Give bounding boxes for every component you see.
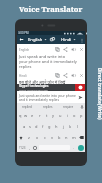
button[interactable]: Share	[63, 47, 68, 52]
button[interactable]: q	[17, 110, 23, 121]
staticText: b	[58, 135, 61, 140]
button[interactable]: replied	[17, 103, 37, 110]
staticText: Hindi	[61, 37, 72, 43]
staticText: e	[31, 113, 34, 118]
button[interactable]: s	[27, 121, 33, 132]
staticText: ,	[29, 145, 31, 150]
staticText: i	[67, 113, 69, 118]
button[interactable]: u	[57, 110, 64, 121]
staticText: r	[39, 113, 41, 118]
staticText: w	[24, 113, 28, 118]
staticText: x	[36, 135, 39, 140]
button[interactable]: Copy	[55, 73, 60, 78]
button[interactable]: Hindi	[57, 35, 79, 44]
button[interactable]: w	[23, 110, 29, 121]
button[interactable]: k	[67, 121, 74, 132]
button[interactable]: n	[63, 132, 70, 143]
staticText: Voice Translator	[19, 4, 83, 14]
staticText: Direct translate(Write)	[97, 68, 102, 120]
button[interactable]: More options	[79, 35, 85, 44]
button[interactable]: ,	[27, 143, 32, 152]
button[interactable]: Share	[63, 73, 68, 78]
button[interactable]: g	[46, 121, 53, 132]
button[interactable]: c	[41, 132, 49, 143]
button[interactable]: r	[36, 110, 43, 121]
staticText: z	[28, 135, 30, 140]
button[interactable]: Copy	[55, 47, 60, 52]
button[interactable]: j	[60, 121, 67, 132]
button[interactable]: replies	[37, 103, 58, 110]
button[interactable]: x	[33, 132, 41, 143]
button[interactable]: Swap languages	[48, 35, 57, 44]
button[interactable]: p	[78, 110, 85, 121]
button[interactable]: .	[71, 143, 76, 152]
button[interactable]: v	[49, 132, 56, 143]
staticText: u	[59, 113, 62, 118]
staticText: 3:00 PM	[18, 31, 29, 35]
button[interactable]: z	[25, 132, 33, 143]
staticText: replies	[19, 64, 32, 69]
button[interactable]: f	[39, 121, 46, 132]
staticText: m	[72, 135, 76, 140]
staticText: .	[73, 145, 75, 150]
button[interactable]: o	[71, 110, 78, 121]
button[interactable]: d	[33, 121, 39, 132]
button[interactable]: Shift	[17, 132, 25, 143]
staticText: a	[23, 124, 26, 129]
staticText: replies	[43, 105, 53, 109]
staticText: f	[42, 124, 44, 129]
button[interactable]: Listen	[71, 73, 76, 78]
staticText: q	[19, 113, 22, 118]
button[interactable]: Voice input	[79, 103, 85, 110]
button[interactable]: a	[21, 121, 27, 132]
button[interactable]: require	[58, 103, 79, 110]
button[interactable]: i	[64, 110, 71, 121]
button[interactable]: m	[70, 132, 77, 143]
staticText: s	[29, 124, 31, 129]
button[interactable]: y	[50, 110, 57, 121]
button[interactable]: Back	[17, 35, 26, 44]
button[interactable]: Emoji	[32, 143, 38, 152]
staticText: v	[51, 135, 54, 140]
button[interactable]: English	[26, 35, 48, 44]
staticText: Just speak and write into your phone	[19, 93, 76, 97]
staticText: और यह तुरंत जवाब देता है	[19, 85, 57, 90]
staticText: l	[77, 124, 79, 129]
button[interactable]: Close	[79, 47, 84, 52]
staticText: k	[69, 124, 72, 129]
staticText: y	[52, 113, 55, 118]
button[interactable]: Skype® technologies	[17, 84, 85, 91]
button[interactable]: b	[56, 132, 63, 143]
staticText: h	[55, 124, 58, 129]
staticText: j	[63, 124, 65, 129]
button[interactable]: Listen	[71, 47, 76, 52]
button[interactable]: l	[74, 121, 81, 132]
button[interactable]: h	[53, 121, 60, 132]
staticText: बस बोलें और अपने फ़ोन में लिखें	[19, 80, 66, 85]
staticText: n	[65, 135, 68, 140]
staticText: and it immediately replies	[19, 97, 60, 101]
staticText: your phone and it immediately	[19, 59, 77, 64]
button[interactable]: e	[29, 110, 36, 121]
button[interactable]: Send	[77, 94, 84, 101]
staticText: c	[44, 135, 46, 140]
staticText: p	[80, 113, 83, 118]
staticText: replied	[22, 105, 32, 109]
staticText: Hindi	[19, 74, 27, 78]
button[interactable]: Close	[79, 73, 84, 78]
button[interactable]: ?123	[17, 143, 27, 152]
staticText: g	[48, 124, 51, 129]
staticText: English	[28, 37, 43, 43]
staticText: Skype® technologies	[19, 84, 49, 88]
button[interactable]: Enter	[76, 143, 85, 152]
staticText: Group Voice&Video Calls	[19, 88, 48, 91]
staticText: o	[73, 113, 76, 118]
staticText: English	[19, 48, 30, 52]
button[interactable]: t	[43, 110, 50, 121]
staticText: ?123	[19, 146, 26, 150]
staticText: d	[35, 124, 38, 129]
staticText: t	[46, 113, 48, 118]
staticText: require	[63, 105, 74, 109]
button[interactable]: Backspace	[77, 132, 85, 143]
